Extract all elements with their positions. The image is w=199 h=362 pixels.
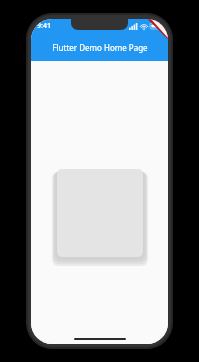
staticText: 9:41 (37, 21, 51, 31)
other: Debug banner (134, 19, 168, 53)
staticText: Flutter Demo Home Page (52, 42, 148, 53)
